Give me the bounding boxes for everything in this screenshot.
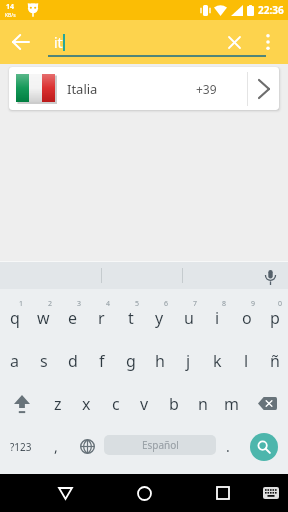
button[interactable] [260,267,280,287]
staticText: e [68,307,78,329]
staticText: 2 [48,299,53,309]
staticText: w [37,307,50,329]
staticText: it [54,33,63,52]
button[interactable] [260,27,276,57]
button[interactable]: s [29,339,58,382]
staticText: +39 [196,81,217,97]
button[interactable] [246,382,288,425]
staticText: p [270,307,280,329]
button[interactable] [70,425,104,468]
button[interactable] [129,478,159,508]
button[interactable]: b [159,382,188,425]
button[interactable] [0,382,43,425]
button[interactable]: v [130,382,159,425]
staticText: 4 [106,299,111,309]
button[interactable]: ?123 [0,425,42,468]
button[interactable]: ñ [261,339,288,382]
staticText: 3 [77,299,82,309]
button[interactable]: . [216,425,240,468]
button[interactable]: o [232,296,261,339]
staticText: f [99,350,105,372]
staticText: i [215,307,220,329]
staticText: h [155,350,165,372]
button[interactable] [50,478,80,508]
button[interactable]: d [58,339,87,382]
button[interactable]: l [232,339,261,382]
button[interactable]: y [145,296,174,339]
staticText: 7 [193,299,198,309]
staticText: r [98,307,105,329]
staticText: a [10,350,19,372]
button[interactable] [6,27,36,57]
staticText: z [54,393,62,415]
staticText: 0 [278,299,283,309]
staticText: x [82,393,91,415]
staticText: 1 [19,299,24,309]
staticText: 14 [6,2,15,12]
staticText: m [224,393,239,415]
button[interactable]: i [203,296,232,339]
staticText: s [40,350,48,372]
staticText: q [10,307,20,329]
button[interactable]: e [58,296,87,339]
staticText: . [226,437,230,456]
button[interactable]: r [87,296,116,339]
button[interactable]: Italia [9,67,279,110]
staticText: l [244,350,249,372]
button[interactable]: p [261,296,288,339]
button[interactable] [208,478,238,508]
staticText: y [155,307,164,329]
staticText: KB/s [5,12,16,19]
button[interactable]: u [174,296,203,339]
button[interactable]: t [116,296,145,339]
staticText: 6 [164,299,169,309]
staticText: o [242,307,252,329]
button[interactable]: q [0,296,29,339]
button[interactable]: Español [104,425,216,468]
staticText: k [213,350,222,372]
button[interactable]: h [145,339,174,382]
button[interactable] [260,482,282,504]
staticText: , [54,437,58,456]
button[interactable]: w [29,296,58,339]
button[interactable]: k [203,339,232,382]
staticText: v [140,393,149,415]
staticText: Español [142,438,179,452]
button[interactable]: j [174,339,203,382]
staticText: j [186,350,191,372]
button[interactable]: f [87,339,116,382]
staticText: u [184,307,194,329]
staticText: 5 [135,299,140,309]
staticText: b [169,393,179,415]
staticText: 22:36 [258,3,284,17]
button[interactable] [240,425,288,468]
button[interactable]: x [72,382,101,425]
button[interactable]: n [188,382,217,425]
staticText: d [68,350,78,372]
button[interactable]: m [217,382,246,425]
staticText: g [126,350,136,372]
staticText: c [112,393,120,415]
staticText: n [198,393,208,415]
staticText: 9 [251,299,256,309]
staticText: Italia [67,80,98,98]
staticText: ?123 [10,440,32,454]
staticText: 8 [222,299,227,309]
button[interactable]: , [42,425,70,468]
button[interactable]: a [0,339,29,382]
button[interactable] [222,30,246,54]
button[interactable]: c [101,382,130,425]
button[interactable]: g [116,339,145,382]
staticText: ñ [270,350,280,372]
staticText: t [128,307,134,329]
button[interactable]: z [43,382,72,425]
